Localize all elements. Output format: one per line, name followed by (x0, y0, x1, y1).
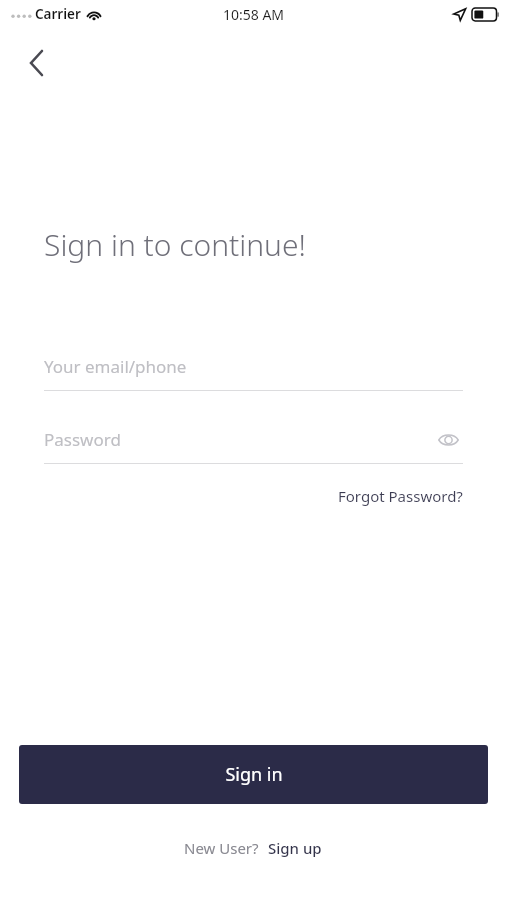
staticText: Forgot Password? (338, 486, 463, 506)
button[interactable]: Sign up (267, 836, 323, 860)
staticText: Password (44, 428, 121, 451)
button[interactable]: Password (44, 422, 463, 464)
staticText: Carrier (35, 5, 81, 23)
button[interactable]: Back (14, 41, 58, 85)
button[interactable]: Sign in (19, 745, 488, 804)
staticText: 10:58 AM (223, 5, 285, 24)
button[interactable]: Your email/phone (44, 349, 463, 391)
button[interactable]: Forgot Password? (338, 484, 463, 508)
staticText: Your email/phone (44, 355, 187, 378)
button[interactable]: Show password (433, 425, 463, 455)
staticText: Sign up (268, 838, 322, 858)
staticText: New User? (184, 838, 259, 858)
staticText: Sign in (225, 762, 283, 787)
staticText: Sign in to continue! (44, 224, 306, 265)
